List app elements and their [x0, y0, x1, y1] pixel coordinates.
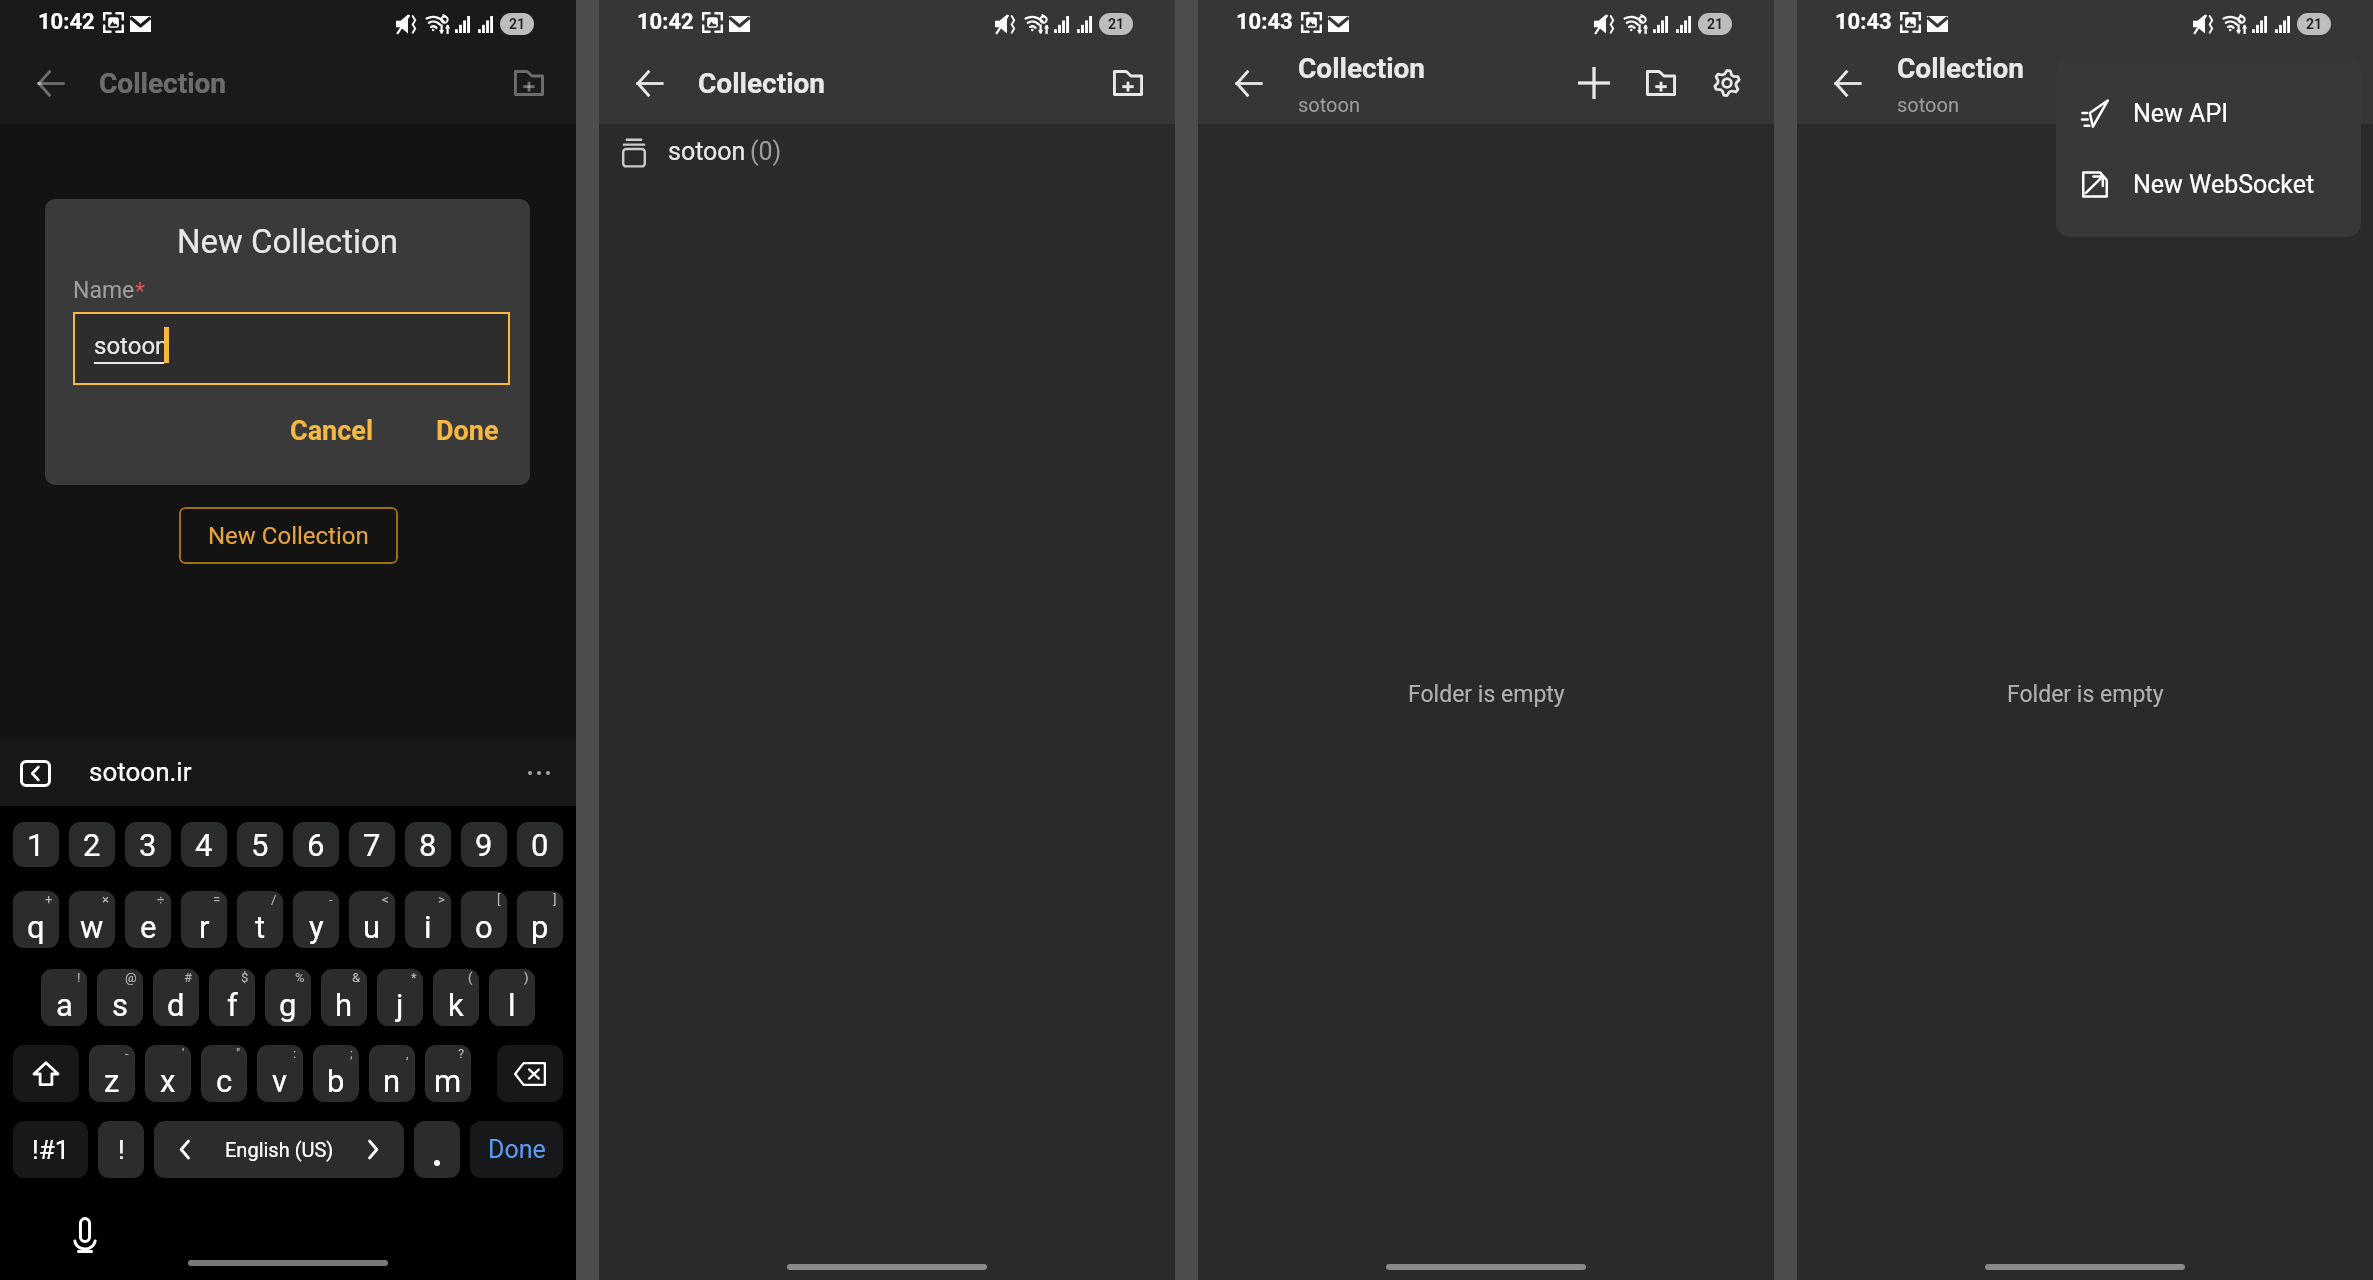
button[interactable]: Settings: [1703, 59, 1751, 107]
button[interactable]: English (US): [154, 1121, 404, 1178]
staticText: ): [524, 970, 529, 985]
staticText: -: [329, 892, 333, 907]
button[interactable]: b: [313, 1045, 359, 1102]
button[interactable]: New Collection: [179, 507, 398, 564]
button[interactable]: r: [181, 891, 227, 948]
button[interactable]: Back: [626, 59, 674, 107]
staticText: sotoon: [668, 137, 752, 166]
button[interactable]: Cancel: [281, 407, 383, 455]
button[interactable]: x: [145, 1045, 191, 1102]
staticText: b: [327, 1063, 345, 1099]
staticText: ;: [350, 1046, 353, 1061]
button[interactable]: j: [377, 969, 423, 1026]
button[interactable]: Back: [1824, 59, 1872, 107]
button[interactable]: u: [349, 891, 395, 948]
staticText: (0): [750, 137, 782, 166]
staticText: 10:42: [637, 9, 694, 35]
button[interactable]: h: [321, 969, 367, 1026]
button[interactable]: t: [237, 891, 283, 948]
staticText: y: [309, 909, 324, 945]
staticText: 6: [307, 827, 325, 863]
staticText: #: [184, 970, 193, 985]
staticText: j: [396, 987, 404, 1023]
staticText: *: [411, 970, 417, 985]
button[interactable]: p: [517, 891, 563, 948]
staticText: 4: [195, 827, 213, 863]
button[interactable]: More options: [520, 763, 558, 783]
button[interactable]: Done: [470, 1121, 563, 1178]
button[interactable]: Previous: [20, 760, 51, 787]
staticText: Done: [488, 1135, 546, 1164]
button[interactable]: New folder: [1637, 59, 1685, 107]
button[interactable]: v: [257, 1045, 303, 1102]
button[interactable]: 1: [13, 822, 59, 867]
staticText: New Collection: [45, 222, 530, 261]
staticText: ]: [553, 892, 557, 907]
staticText: ×: [102, 892, 109, 907]
staticText: sotoon: [1298, 93, 1360, 116]
button[interactable]: e: [125, 891, 171, 948]
staticText: Collection: [1897, 52, 2025, 85]
button[interactable]: 9: [461, 822, 507, 867]
button[interactable]: d: [153, 969, 199, 1026]
button[interactable]: z: [89, 1045, 135, 1102]
button[interactable]: c: [201, 1045, 247, 1102]
button[interactable]: sotoon: [73, 312, 510, 385]
staticText: -: [125, 1046, 129, 1061]
button[interactable]: q: [13, 891, 59, 948]
staticText: a: [56, 987, 73, 1023]
button[interactable]: k: [433, 969, 479, 1026]
button[interactable]: 4: [181, 822, 227, 867]
button[interactable]: 0: [517, 822, 563, 867]
button[interactable]: Period: [414, 1121, 460, 1178]
button[interactable]: w: [69, 891, 115, 948]
button[interactable]: 3: [125, 822, 171, 867]
staticText: @: [125, 970, 137, 985]
staticText: 1: [27, 827, 45, 863]
button[interactable]: Back: [1225, 59, 1273, 107]
button[interactable]: !#1: [13, 1121, 88, 1178]
button[interactable]: y: [293, 891, 339, 948]
staticText: 10:42: [38, 9, 95, 35]
staticText: sotoon.ir: [89, 757, 192, 787]
staticText: o: [475, 909, 493, 945]
staticText: Name: [73, 277, 135, 304]
button[interactable]: 7: [349, 822, 395, 867]
button[interactable]: sotoon: [599, 124, 1175, 188]
button[interactable]: 6: [293, 822, 339, 867]
button[interactable]: !: [98, 1121, 144, 1178]
staticText: 10:43: [1835, 9, 1892, 35]
staticText: Collection: [698, 67, 826, 100]
staticText: 9: [475, 827, 493, 863]
button[interactable]: l: [489, 969, 535, 1026]
button[interactable]: a: [41, 969, 87, 1026]
button[interactable]: New WebSocket: [2056, 149, 2361, 219]
button[interactable]: Back: [27, 59, 75, 107]
button[interactable]: g: [265, 969, 311, 1026]
staticText: Folder is empty: [2007, 681, 2164, 708]
button[interactable]: s: [97, 969, 143, 1026]
button[interactable]: 8: [405, 822, 451, 867]
button[interactable]: i: [405, 891, 451, 948]
button[interactable]: New folder: [1104, 59, 1152, 107]
staticText: g: [279, 987, 297, 1023]
button[interactable]: New API: [2056, 78, 2361, 148]
staticText: [: [497, 892, 501, 907]
staticText: &: [352, 970, 361, 985]
staticText: z: [104, 1063, 120, 1099]
button[interactable]: Shift: [13, 1045, 79, 1102]
button[interactable]: Add: [1570, 59, 1618, 107]
button[interactable]: o: [461, 891, 507, 948]
button[interactable]: 5: [237, 822, 283, 867]
button[interactable]: 2: [69, 822, 115, 867]
button[interactable]: m: [425, 1045, 471, 1102]
button[interactable]: New folder: [505, 59, 553, 107]
button[interactable]: Voice input: [64, 1214, 105, 1255]
staticText: 7: [363, 827, 381, 863]
button[interactable]: Done: [427, 407, 508, 455]
staticText: /: [271, 892, 277, 907]
button[interactable]: n: [369, 1045, 415, 1102]
button[interactable]: Backspace: [497, 1045, 563, 1102]
staticText: 2: [83, 827, 101, 863]
button[interactable]: f: [209, 969, 255, 1026]
